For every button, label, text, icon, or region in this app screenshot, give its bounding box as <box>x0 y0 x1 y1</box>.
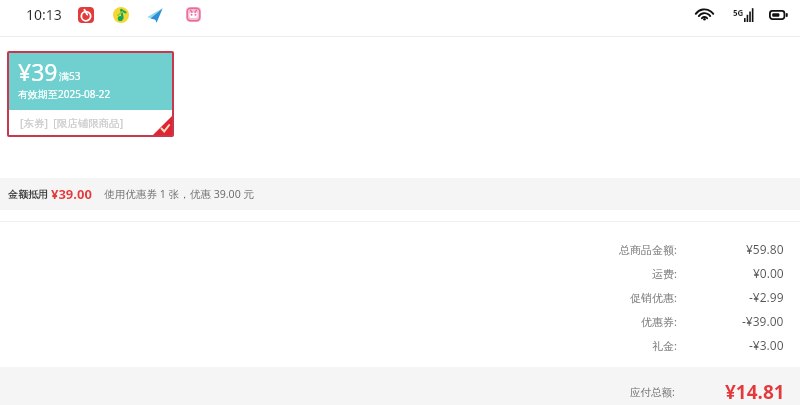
staticText: 使用优惠券 1 张，优惠 39.00 元 <box>104 187 255 201</box>
staticText: 礼金: <box>652 338 677 353</box>
staticText: -¥39.00 <box>742 313 784 329</box>
staticText: -¥2.99 <box>749 289 784 305</box>
staticText: -¥3.00 <box>749 337 784 353</box>
other: 5G signal <box>733 7 754 22</box>
staticText: ¥0.00 <box>753 265 784 281</box>
other: NetEase Music <box>78 7 94 23</box>
staticText: 满53 <box>59 69 81 83</box>
staticText: 5G <box>733 7 744 18</box>
button[interactable]: ¥39 <box>9 53 172 135</box>
staticText: 促销优惠: <box>630 290 677 305</box>
button[interactable]: 金额抵用 <box>0 178 800 210</box>
staticText: 优惠券: <box>641 314 677 329</box>
staticText: 总商品金额: <box>619 242 677 257</box>
other: Music <box>113 7 129 23</box>
staticText: [东券] [限店铺限商品] <box>20 116 124 130</box>
staticText: 有效期至2025-08-22 <box>18 87 111 101</box>
other: Bilibili <box>186 7 201 22</box>
staticText: ¥39 <box>18 56 58 87</box>
other: Wi-Fi <box>695 7 714 22</box>
staticText: ¥59.80 <box>746 241 784 257</box>
staticText: ¥39.00 <box>51 185 92 203</box>
other: Telegram <box>147 7 163 23</box>
staticText: ¥14.81 <box>725 379 785 405</box>
staticText: 运费: <box>652 266 677 281</box>
other: Battery <box>769 10 788 20</box>
staticText: 10:13 <box>26 5 62 24</box>
staticText: 金额抵用 <box>8 188 48 201</box>
staticText: 应付总额: <box>630 385 675 399</box>
